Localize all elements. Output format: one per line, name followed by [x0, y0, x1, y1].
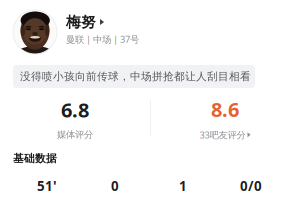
staticText: 8.6 [211, 96, 239, 123]
staticText: 梅努 [66, 13, 96, 31]
staticText: 没得喷小孩向前传球，中场拼抢都让人刮目相看 [20, 70, 251, 83]
staticText: 媒体评分 [57, 129, 93, 140]
staticText: 6.8 [61, 96, 89, 123]
staticText: 基础数据 [13, 152, 57, 165]
staticText: 0 [111, 177, 119, 195]
staticText: 曼联 | 中场 | 37号 [66, 33, 139, 45]
staticText: 51' [37, 177, 57, 195]
button[interactable]: 8.6 [150, 96, 300, 141]
staticText: 1 [179, 177, 187, 195]
button[interactable]: 梅努 [66, 13, 104, 31]
staticText: 33吧友评分 [199, 129, 245, 141]
staticText: 0/0 [240, 177, 262, 195]
button[interactable]: 球员头像 [13, 10, 57, 54]
